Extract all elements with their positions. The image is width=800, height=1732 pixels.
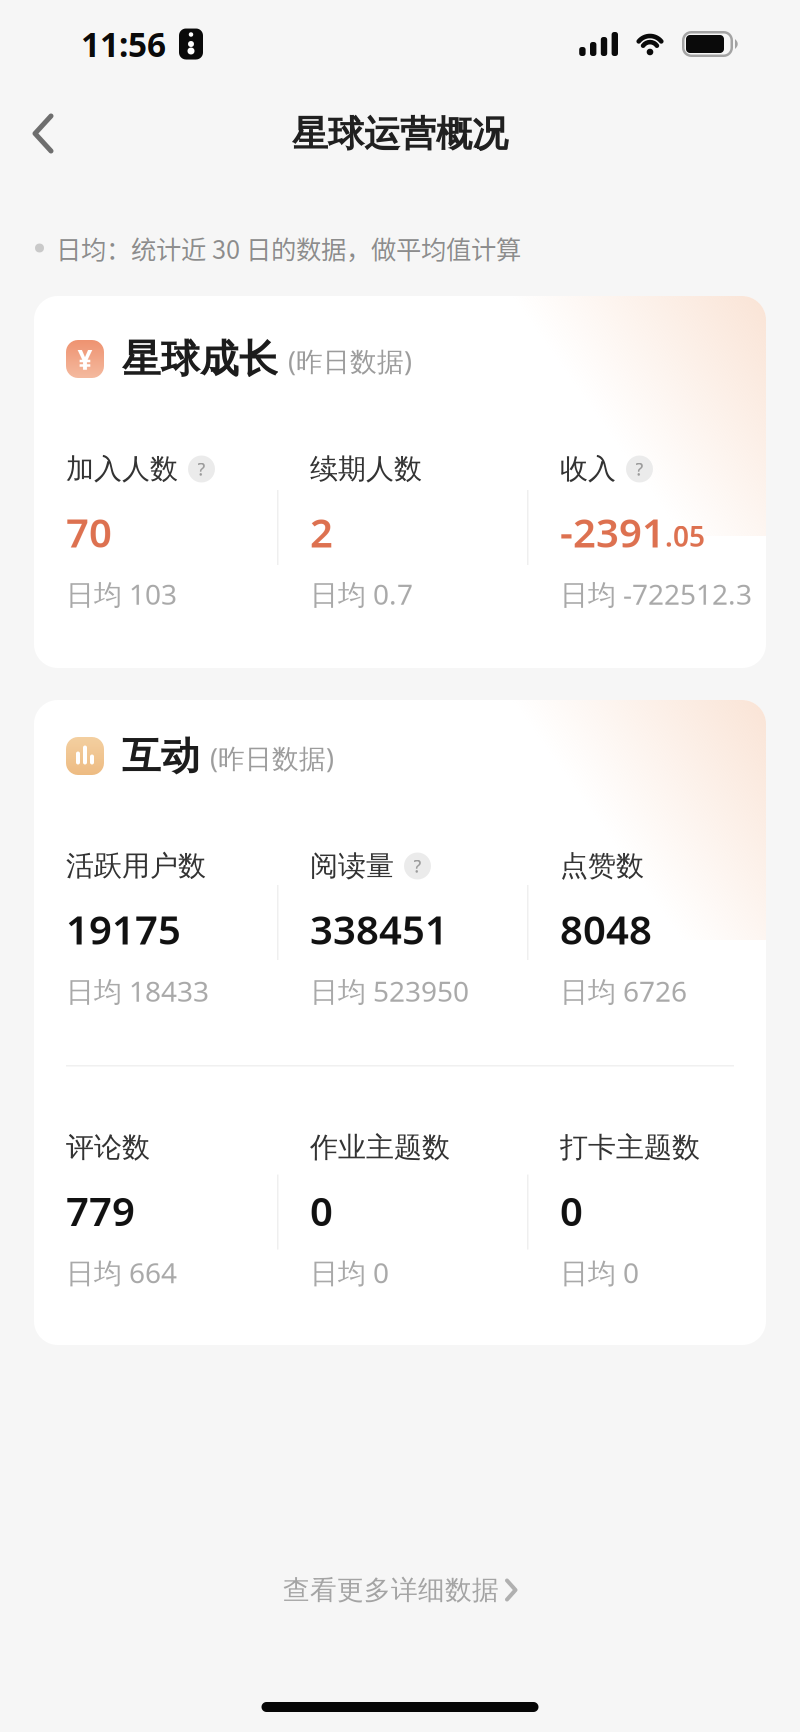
staticText: (昨日数据) [288, 343, 412, 379]
staticText: 0 [310, 1184, 333, 1237]
staticText: 打卡主题数 [560, 1130, 700, 1165]
staticText: ? [413, 854, 421, 877]
button[interactable]: 说明 [404, 852, 431, 879]
staticText: 779 [66, 1184, 135, 1237]
staticText: 2 [310, 505, 333, 558]
staticText: 8048 [560, 902, 652, 955]
staticText: 日均 523950 [310, 972, 469, 1010]
staticText: ¥ [77, 340, 93, 378]
staticText: 阅读量 [310, 849, 394, 883]
staticText: -2391 [560, 505, 665, 558]
staticText: 日均 664 [66, 1254, 177, 1291]
staticText: 活跃用户数 [66, 849, 206, 883]
staticText: 加入人数 [66, 452, 178, 486]
staticText: 作业主题数 [310, 1130, 450, 1165]
staticText: 评论数 [66, 1130, 150, 1165]
staticText: 星球成长 [122, 335, 278, 383]
button[interactable]: 说明 [626, 455, 653, 482]
staticText: 日均：统计近 30 日的数据，做平均值计算 [56, 230, 521, 266]
staticText: (昨日数据) [210, 740, 334, 776]
staticText: 日均 6726 [560, 972, 687, 1010]
staticText: ? [635, 457, 643, 480]
button[interactable]: 查看更多详细数据 [283, 1572, 517, 1608]
staticText: 日均 18433 [66, 972, 209, 1010]
staticText: ? [197, 457, 205, 480]
staticText: 70 [66, 505, 112, 558]
staticText: .05 [665, 517, 705, 555]
staticText: 续期人数 [310, 452, 422, 486]
button[interactable]: 说明 [188, 455, 215, 482]
staticText: 星球运营概况 [292, 112, 508, 156]
staticText: 338451 [310, 902, 448, 955]
staticText: 互动 [122, 732, 200, 780]
staticText: 19175 [66, 902, 181, 955]
staticText: 日均 0.7 [310, 575, 413, 613]
staticText: 0 [560, 1184, 583, 1237]
staticText: 日均 -722512.3 [560, 575, 752, 613]
staticText: 日均 0 [560, 1254, 639, 1291]
button[interactable]: Back [0, 116, 52, 152]
staticText: 11:56 [81, 22, 166, 66]
staticText: 日均 103 [66, 575, 177, 613]
staticText: 点赞数 [560, 849, 644, 883]
staticText: 查看更多详细数据 [283, 1574, 499, 1606]
staticText: 收入 [560, 452, 616, 486]
staticText: 日均 0 [310, 1254, 389, 1291]
